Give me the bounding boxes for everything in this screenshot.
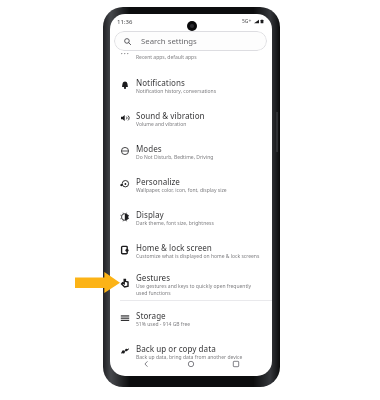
button[interactable]: Modes [110,134,272,167]
button[interactable]: Personalize [110,167,272,200]
button[interactable]: Sound & vibration [110,101,272,134]
button[interactable]: Display [110,200,272,233]
staticText: Search settings [141,36,197,47]
staticText: Notifications [136,77,185,88]
staticText: Dark theme, font size, brightness [136,220,214,227]
other: Pointer [75,272,120,293]
button[interactable]: Back up or copy data [110,334,272,367]
staticText: Volume and vibration [136,121,187,128]
button[interactable]: Recent apps, default apps [110,51,272,68]
staticText: Personalize [136,176,180,187]
staticText: Storage [136,310,166,321]
staticText: Sound & vibration [136,110,205,121]
staticText: Use gestures and keys to quickly open fr… [136,283,252,290]
staticText: 11:36 [117,18,133,26]
staticText: 5G+ [242,18,252,25]
staticText: Display [136,209,164,220]
button[interactable]: Storage [110,301,272,334]
button[interactable]: Gestures [110,266,272,300]
button[interactable]: Back [139,357,152,370]
button[interactable]: Search settings [114,31,267,51]
staticText: Wallpaper, color, icon, font, display si… [136,187,227,194]
staticText: Back up or copy data [136,343,216,354]
button[interactable]: Notifications [110,68,272,101]
button[interactable]: Recent apps [229,357,242,370]
staticText: Home & lock screen [136,242,212,253]
staticText: Back up data, bring data from another de… [136,354,243,361]
staticText: Modes [136,143,162,154]
staticText: Gestures [136,272,171,283]
staticText: Customize what is displayed on home & lo… [136,253,260,260]
staticText: Do Not Disturb, Bedtime, Driving [136,154,214,161]
staticText: 51% used - 914 GB free [136,321,191,328]
staticText: Notification history, conversations [136,88,217,95]
button[interactable]: Home & lock screen [110,233,272,266]
staticText: used functions [136,290,171,297]
staticText: Recent apps, default apps [136,54,197,61]
button[interactable]: Home [184,357,197,370]
